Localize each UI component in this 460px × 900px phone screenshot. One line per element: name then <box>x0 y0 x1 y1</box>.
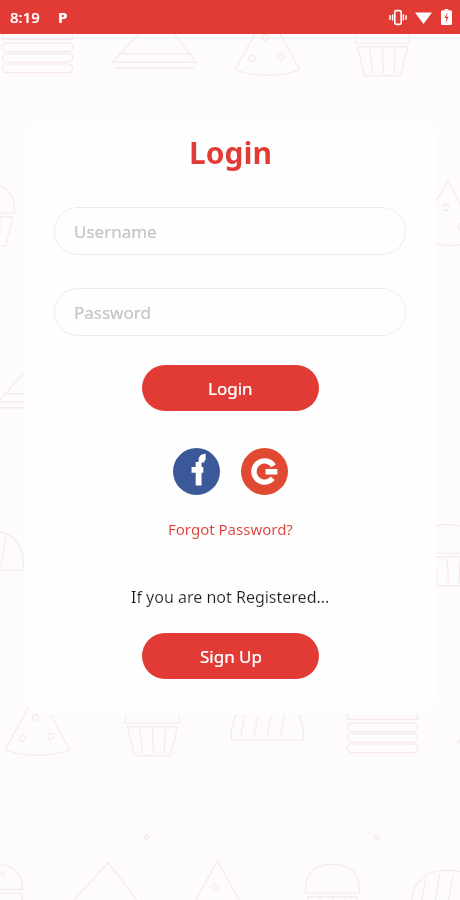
button[interactable]: Sign in with Facebook <box>173 448 220 495</box>
button[interactable]: Login <box>142 365 319 411</box>
staticText: Sign Up <box>200 645 262 668</box>
staticText: 8:19 <box>10 7 40 27</box>
staticText: Login <box>208 377 253 400</box>
button[interactable]: Sign Up <box>142 633 319 679</box>
staticText: Login <box>189 132 272 173</box>
staticText: Forgot Password? <box>168 519 293 539</box>
button[interactable]: Password <box>54 288 406 336</box>
staticText: If you are not Registered... <box>131 586 330 608</box>
button[interactable]: Forgot Password? <box>160 516 301 542</box>
staticText: Username <box>74 220 157 243</box>
staticText: Password <box>74 301 151 324</box>
staticText: P <box>58 7 68 27</box>
button[interactable]: Sign in with Google <box>241 448 288 495</box>
button[interactable]: Username <box>54 207 406 255</box>
